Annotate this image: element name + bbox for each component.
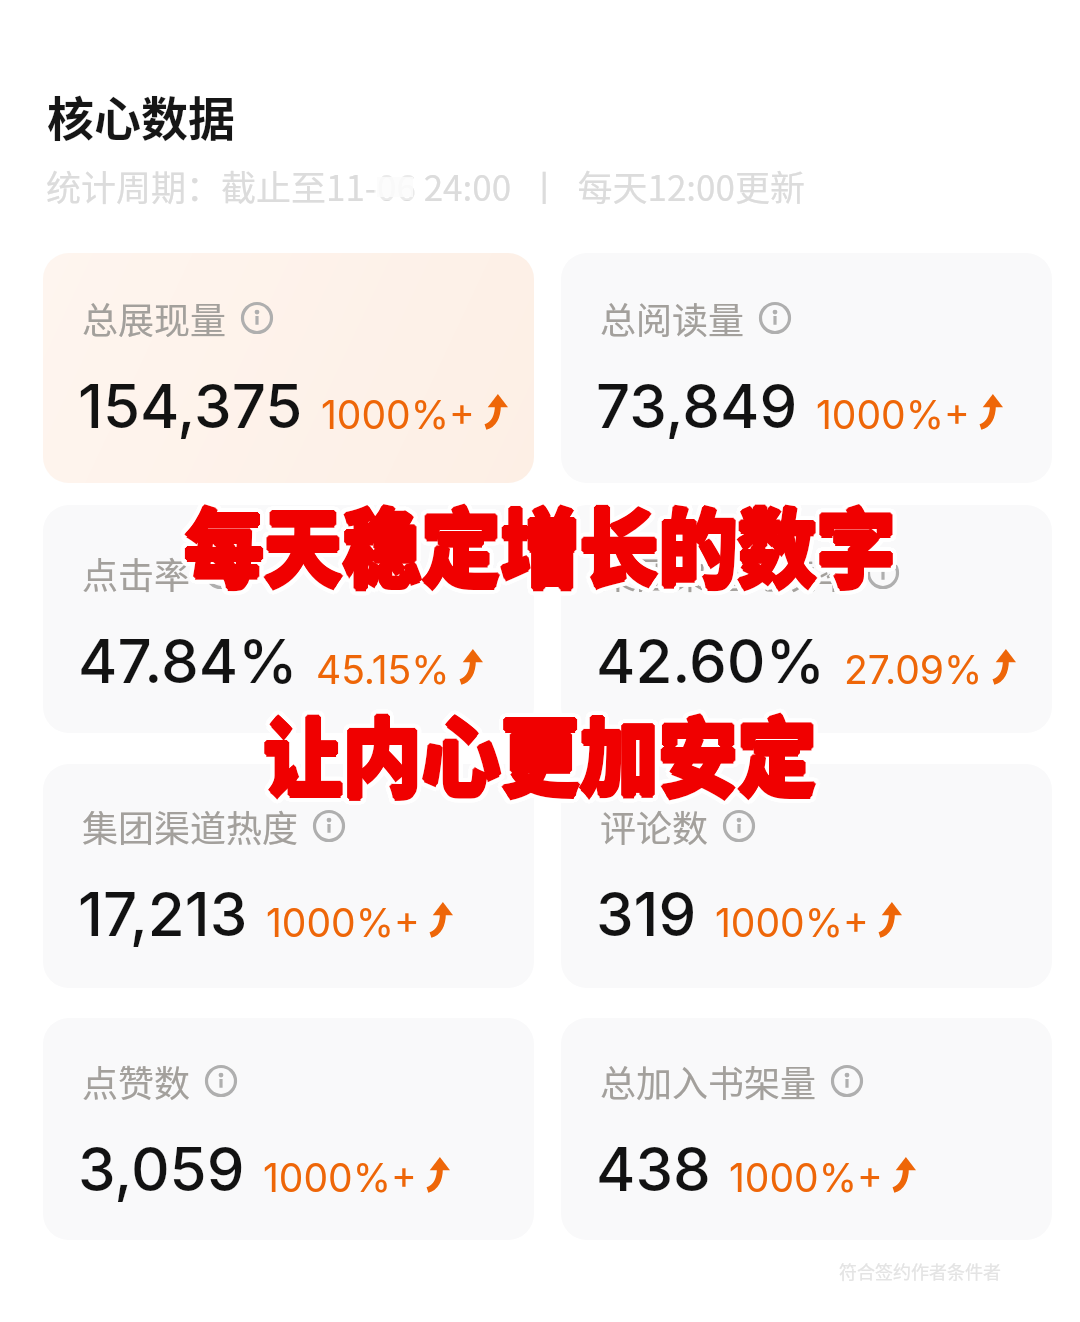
staticText: 让内心更加安定: [0, 689, 1079, 812]
staticText: 让内心更加安定: [0, 689, 1080, 812]
staticText: 让内心更加安定: [0, 695, 1077, 818]
staticText: 1000%+: [816, 391, 970, 438]
staticText: 每天稳定增长的数字: [0, 487, 1080, 611]
button[interactable]: 关于总阅读量 的说明: [758, 301, 792, 335]
staticText: 每天稳定增长的数字: [0, 481, 1078, 604]
staticText: 每天稳定增长的数字: [1, 481, 1080, 604]
staticText: 让内心更加安定: [2, 695, 1080, 818]
staticText: 让内心更加安定: [0, 690, 1077, 813]
button[interactable]: 关于点赞数 的说明: [204, 1064, 238, 1098]
staticText: 让内心更加安定: [3, 694, 1080, 817]
staticText: 每天稳定增长的数字: [5, 484, 1080, 607]
staticText: 每天稳定增长的数字: [0, 486, 1080, 609]
staticText: 每天稳定增长的数字: [0, 476, 1079, 599]
staticText: 每天稳定增长的数字: [0, 476, 1080, 599]
staticText: 让内心更加安定: [0, 687, 1076, 810]
button[interactable]: 关于总展现量 的说明: [240, 301, 274, 335]
staticText: 每天稳定增长的数字: [4, 485, 1080, 608]
staticText: 让内心更加安定: [0, 690, 1079, 813]
button[interactable]: 集团渠道完读率: [561, 505, 1052, 733]
staticText: 每天稳定增长的数字: [0, 484, 1076, 607]
staticText: 让内心更加安定: [0, 686, 1077, 809]
staticText: 让内心更加安定: [0, 695, 1080, 818]
staticText: 评论数: [600, 800, 709, 852]
button[interactable]: 点击率: [43, 505, 534, 733]
staticText: 每天稳定增长的数字: [3, 486, 1080, 609]
staticText: 每天稳定增长的数字: [1, 477, 1080, 600]
staticText: 每天稳定增长的数字: [4, 482, 1080, 605]
staticText: 每天稳定增长的数字: [3, 482, 1080, 605]
staticText: 让内心更加安定: [0, 687, 1079, 810]
staticText: 每天稳定增长的数字: [0, 480, 1080, 603]
staticText: 每天稳定增长的数字: [3, 481, 1080, 604]
staticText: 27.09%: [844, 646, 983, 693]
staticText: 让内心更加安定: [0, 693, 1080, 816]
staticText: 154,375: [78, 370, 303, 443]
button[interactable]: 关于总加入书架量 的说明: [830, 1064, 864, 1098]
staticText: 让内心更加安定: [0, 696, 1080, 820]
staticText: 让内心更加安定: [0, 685, 1078, 808]
button[interactable]: 关于集团渠道完读率 的说明: [866, 556, 900, 590]
staticText: 每天稳定增长的数字: [0, 484, 1080, 607]
staticText: 让内心更加安定: [5, 693, 1080, 816]
staticText: 每天稳定增长的数字: [0, 477, 1079, 600]
button[interactable]: 集团渠道热度: [43, 764, 534, 988]
button[interactable]: 点赞数: [43, 1018, 534, 1240]
staticText: 每天稳定增长的数字: [1, 482, 1080, 605]
button[interactable]: 总阅读量: [561, 253, 1052, 483]
staticText: 每天稳定增长的数字: [1, 482, 1080, 605]
staticText: 让内心更加安定: [0, 687, 1075, 810]
staticText: 每天稳定增长的数字: [2, 481, 1080, 604]
staticText: 每天稳定增长的数字: [1, 485, 1080, 608]
staticText: 让内心更加安定: [4, 694, 1080, 817]
staticText: 让内心更加安定: [2, 694, 1080, 817]
staticText: 让内心更加安定: [0, 688, 1080, 811]
staticText: 让内心更加安定: [0, 694, 1077, 817]
staticText: 让内心更加安定: [3, 689, 1080, 812]
button[interactable]: 关于集团渠道热度 的说明: [312, 809, 346, 843]
staticText: 让内心更加安定: [0, 686, 1078, 809]
staticText: 让内心更加安定: [1, 689, 1080, 812]
staticText: 每天稳定增长的数字: [0, 478, 1075, 601]
staticText: 每天稳定增长的数字: [0, 482, 1079, 605]
staticText: 让内心更加安定: [0, 687, 1077, 810]
staticText: 让内心更加安定: [0, 688, 1078, 811]
staticText: 1000%+: [263, 1154, 417, 1201]
staticText: 每天稳定增长的数字: [0, 484, 1079, 607]
staticText: 每天稳定增长的数字: [5, 483, 1080, 606]
staticText: 让内心更加安定: [0, 689, 1080, 812]
staticText: 每天稳定增长的数字: [3, 480, 1080, 603]
staticText: 让内心更加安定: [3, 691, 1080, 814]
staticText: 让内心更加安定: [0, 688, 1077, 811]
staticText: 让内心更加安定: [4, 689, 1080, 812]
staticText: 让内心更加安定: [0, 689, 1077, 812]
staticText: 让内心更加安定: [3, 686, 1080, 809]
staticText: 1000%+: [321, 391, 475, 438]
staticText: 每天稳定增长的数字: [2, 486, 1080, 609]
staticText: 每天稳定增长的数字: [0, 480, 1079, 603]
staticText: 每天稳定增长的数字: [4, 477, 1080, 600]
staticText: 让内心更加安定: [0, 693, 1075, 816]
staticText: 集团渠道热度: [82, 800, 299, 852]
staticText: 每天稳定增长的数字: [0, 481, 1077, 604]
staticText: 每天稳定增长的数字: [2, 481, 1080, 604]
staticText: 让内心更加安定: [0, 690, 1080, 813]
staticText: 每天稳定增长的数字: [0, 481, 1080, 604]
button[interactable]: 评论数: [561, 764, 1052, 988]
button[interactable]: 关于评论数 的说明: [722, 809, 756, 843]
staticText: 每天稳定增长的数字: [0, 481, 1076, 604]
staticText: 让内心更加安定: [2, 689, 1080, 812]
staticText: 每天稳定增长的数字: [5, 482, 1080, 605]
staticText: 每天稳定增长的数字: [5, 481, 1080, 604]
button[interactable]: 总加入书架量: [561, 1018, 1052, 1240]
staticText: 每天稳定增长的数字: [1, 479, 1080, 602]
staticText: 让内心更加安定: [4, 687, 1080, 810]
staticText: 每天稳定增长的数字: [0, 483, 1080, 606]
button[interactable]: 关于点击率 的说明: [204, 556, 238, 590]
staticText: 让内心更加安定: [0, 686, 1079, 809]
staticText: 让内心更加安定: [0, 693, 1078, 816]
staticText: 让内心更加安定: [0, 686, 1076, 809]
button[interactable]: 总展现量: [43, 253, 534, 483]
staticText: 每天稳定增长的数字: [0, 476, 1078, 599]
staticText: 每天稳定增长的数字: [0, 480, 1079, 603]
